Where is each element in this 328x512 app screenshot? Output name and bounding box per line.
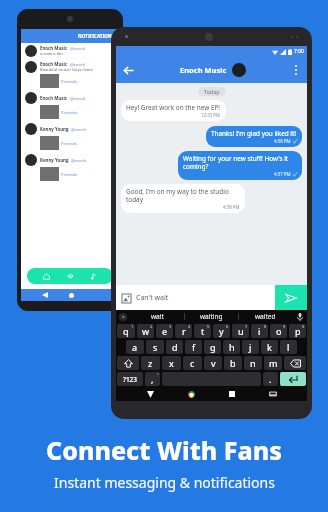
staticText: 12:33 PM xyxy=(201,112,221,118)
button[interactable]: wait xyxy=(130,310,184,323)
button[interactable]: s xyxy=(146,340,164,354)
button[interactable]: y xyxy=(213,324,230,338)
button[interactable]: Waiting for your new stuff! How's it com… xyxy=(178,151,302,180)
staticText: q xyxy=(123,325,129,337)
staticText: m xyxy=(269,357,278,369)
button[interactable]: u xyxy=(232,324,249,338)
staticText: Enoch Music xyxy=(40,45,68,51)
button[interactable]: Backspace xyxy=(284,356,306,370)
staticText: @enoch xyxy=(70,46,86,51)
button[interactable]: a xyxy=(126,340,144,354)
button[interactable]: o xyxy=(270,324,287,338)
staticText: 6 xyxy=(226,324,229,329)
staticText: e xyxy=(162,325,168,337)
staticText: d xyxy=(172,341,178,353)
button[interactable]: x xyxy=(162,356,181,370)
button[interactable]: q xyxy=(117,324,135,338)
staticText: Can't wait xyxy=(136,293,275,303)
button[interactable]: Back xyxy=(116,58,140,82)
button[interactable]: v xyxy=(204,356,222,370)
button[interactable]: waiting xyxy=(185,310,238,323)
button[interactable]: Thanks! I'm glad you liked it! xyxy=(206,126,302,147)
button[interactable]: waited xyxy=(239,310,292,323)
staticText: 4:56 PM xyxy=(274,138,291,144)
staticText: wait xyxy=(151,312,164,321)
button[interactable]: h xyxy=(223,340,240,354)
staticText: Thanks! I'm glad you liked it! xyxy=(211,129,297,138)
button[interactable]: p xyxy=(289,324,306,338)
staticText: l xyxy=(287,341,290,353)
staticText: ° xyxy=(157,372,159,377)
button[interactable]: w xyxy=(137,324,154,338)
staticText: Hey! Great work on the new EP! xyxy=(126,103,221,112)
button[interactable]: b xyxy=(224,356,242,370)
button[interactable]: Switch keyboard xyxy=(266,387,280,401)
staticText: 8 xyxy=(264,324,267,329)
staticText: 4 xyxy=(188,324,191,329)
button[interactable]: r xyxy=(175,324,192,338)
button[interactable] xyxy=(27,268,113,284)
button[interactable]: d xyxy=(166,340,183,354)
staticText: p xyxy=(295,325,301,337)
button[interactable]: Enter xyxy=(280,372,306,386)
button[interactable]: m xyxy=(264,356,282,370)
staticText: Waiting for your new stuff! How's it com… xyxy=(183,154,297,171)
button[interactable]: Recents xyxy=(225,387,239,401)
staticText: Connect With Fans xyxy=(46,433,282,467)
button[interactable]: Send xyxy=(275,285,307,310)
staticText: Kenny Young xyxy=(40,126,69,132)
button[interactable]: j xyxy=(242,340,259,354)
staticText: is now a fan xyxy=(40,51,63,57)
button[interactable]: ?123 xyxy=(117,372,143,386)
staticText: Instant messaging & notifications xyxy=(54,473,275,492)
staticText: Today xyxy=(204,88,220,95)
button[interactable]: l xyxy=(280,340,297,354)
staticText: n xyxy=(250,357,256,369)
button[interactable]: c xyxy=(183,356,202,370)
button[interactable]: Shift xyxy=(117,356,139,370)
staticText: @enoch xyxy=(70,96,86,101)
staticText: Good, I'm on my way to the studio today xyxy=(126,187,240,204)
button[interactable]: e xyxy=(156,324,173,338)
staticText: 5 xyxy=(207,324,210,329)
button[interactable]: g xyxy=(204,340,221,354)
staticText: j xyxy=(249,341,252,353)
staticText: > xyxy=(122,314,125,321)
staticText: Portraits xyxy=(61,79,78,84)
staticText: v xyxy=(211,357,216,369)
staticText: i xyxy=(258,325,261,337)
staticText: h xyxy=(229,341,235,353)
staticText: Kenny Young xyxy=(40,157,69,163)
button[interactable]: Voice input xyxy=(292,310,307,323)
staticText: Beautiful music! Guys listen xyxy=(40,67,93,73)
button[interactable]: Attach image xyxy=(116,288,136,308)
staticText: Portraits xyxy=(61,172,78,177)
button[interactable]: . xyxy=(263,372,278,386)
button[interactable]: i xyxy=(251,324,268,338)
button[interactable]: Home xyxy=(184,387,198,401)
staticText: Enoch Music xyxy=(40,95,68,101)
button[interactable]: Expand suggestions xyxy=(116,310,130,323)
button[interactable]: More options xyxy=(287,61,305,79)
button[interactable]: f xyxy=(185,340,202,354)
staticText: waited xyxy=(255,312,276,321)
button[interactable]: t xyxy=(194,324,211,338)
button[interactable]: Profile photo xyxy=(232,63,246,77)
staticText: 4:57 PM xyxy=(274,171,291,177)
button[interactable]: , xyxy=(145,372,160,386)
button[interactable]: Good, I'm on my way to the studio today xyxy=(121,184,245,213)
staticText: y xyxy=(219,325,224,337)
button[interactable]: Hey! Great work on the new EP! xyxy=(121,100,226,121)
staticText: 7:00 xyxy=(294,48,304,55)
button[interactable]: n xyxy=(244,356,262,370)
button[interactable]: z xyxy=(141,356,160,370)
staticText: c xyxy=(190,357,195,369)
button[interactable]: Hide keyboard xyxy=(143,387,157,401)
button[interactable]: k xyxy=(261,340,278,354)
staticText: a xyxy=(132,341,138,353)
staticText: . xyxy=(269,373,272,385)
staticText: waiting xyxy=(200,312,223,321)
staticText: g xyxy=(210,341,216,353)
staticText: Portraits xyxy=(61,141,78,146)
